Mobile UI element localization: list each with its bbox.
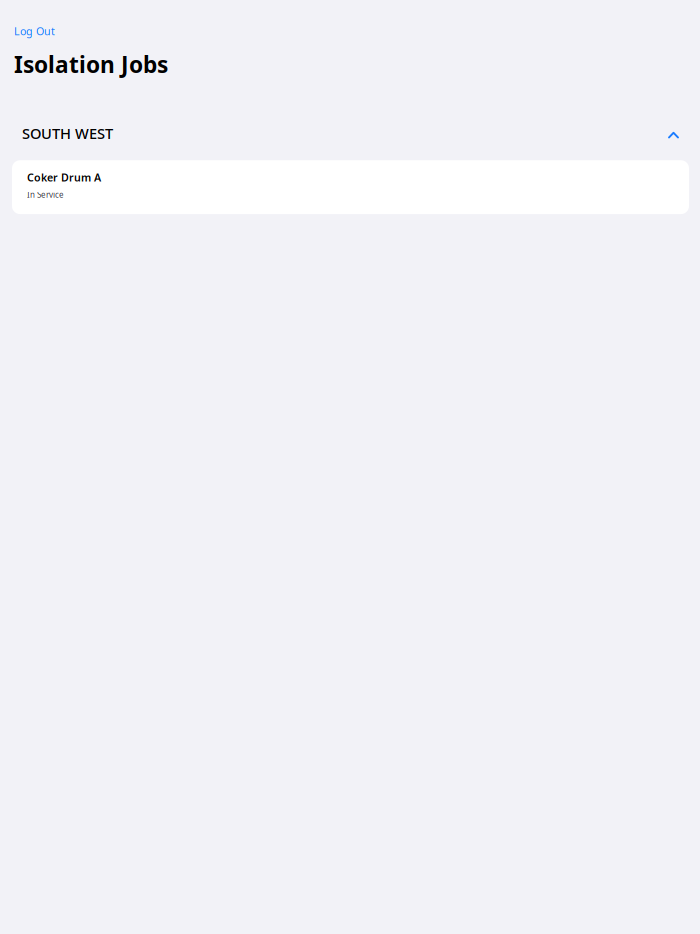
staticText: SOUTH WEST xyxy=(22,123,113,143)
button[interactable]: Log Out xyxy=(0,18,69,44)
staticText: Isolation Jobs xyxy=(14,49,168,79)
button[interactable]: South West, collapse section xyxy=(0,118,700,148)
staticText: Coker Drum A xyxy=(27,170,101,184)
button[interactable]: Coker Drum A xyxy=(12,160,689,214)
staticText: Log Out xyxy=(14,24,55,38)
staticText: In Service xyxy=(27,189,64,200)
